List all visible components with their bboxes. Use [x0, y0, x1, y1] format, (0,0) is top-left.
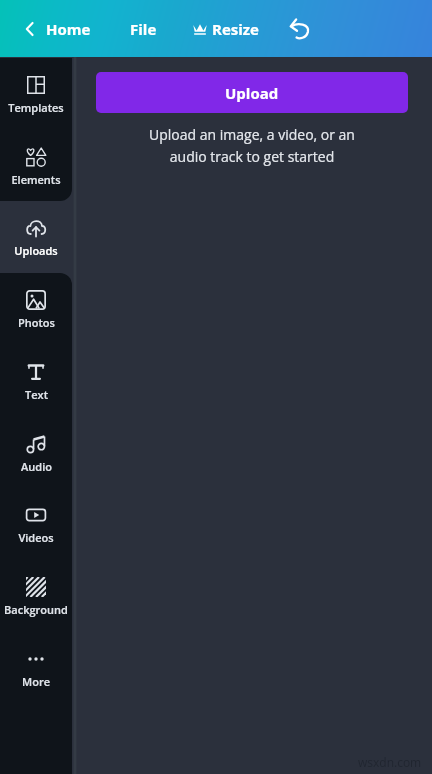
button[interactable]: Templates [0, 58, 72, 130]
staticText: File [130, 19, 157, 39]
staticText: Upload [225, 83, 279, 103]
staticText: Templates [8, 100, 64, 115]
button[interactable]: Audio [0, 417, 72, 489]
staticText: Uploads [14, 243, 58, 258]
button[interactable]: Undo [281, 0, 317, 57]
staticText: Photos [18, 315, 55, 330]
button[interactable]: Videos [0, 488, 72, 560]
button[interactable]: File [122, 0, 165, 57]
staticText: Elements [11, 172, 61, 187]
button[interactable]: Resize [187, 0, 265, 57]
button[interactable]: Upload [96, 72, 408, 113]
button[interactable]: Text [0, 345, 72, 417]
button[interactable]: Uploads [0, 201, 72, 273]
button[interactable]: Background [0, 560, 72, 632]
staticText: Upload an image, a video, or an audio tr… [96, 125, 408, 166]
staticText: Resize [212, 19, 259, 39]
staticText: Background [4, 602, 68, 617]
staticText: Videos [18, 530, 54, 545]
button[interactable]: Photos [0, 273, 72, 345]
button[interactable]: Home [18, 0, 95, 57]
staticText: Audio [21, 459, 52, 474]
staticText: Text [25, 387, 48, 402]
staticText: wsxdn.com [358, 754, 422, 770]
button[interactable]: More [0, 632, 72, 704]
staticText: Home [46, 19, 91, 39]
staticText: More [22, 674, 50, 689]
button[interactable]: Elements [0, 130, 72, 202]
